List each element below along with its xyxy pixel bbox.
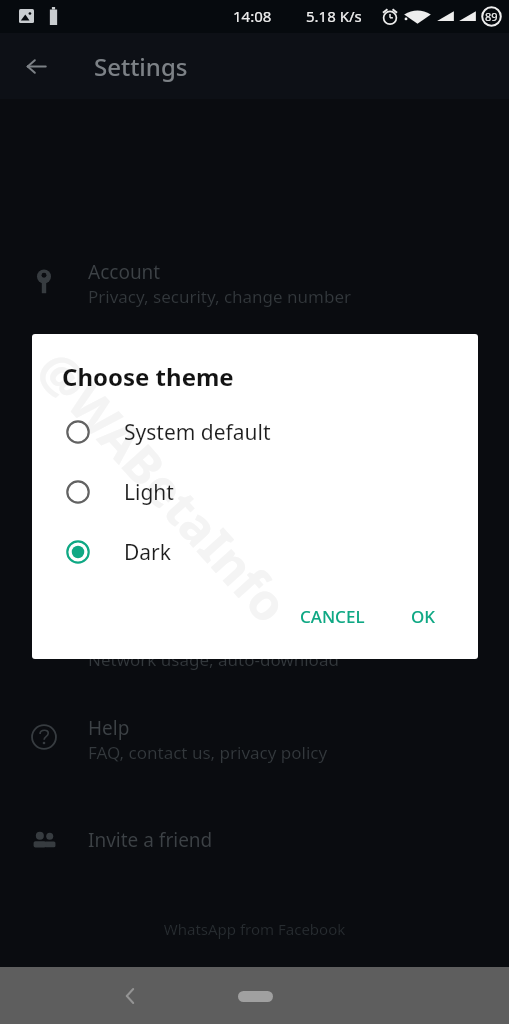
staticText: Account xyxy=(88,259,161,285)
staticText: WhatsApp from Facebook xyxy=(0,919,509,939)
button[interactable]: Back xyxy=(108,974,152,1018)
button[interactable]: Help xyxy=(0,701,509,792)
staticText: CANCEL xyxy=(300,605,365,628)
staticText: OK xyxy=(411,605,436,628)
button[interactable]: Back xyxy=(13,43,59,89)
button[interactable]: Invite a friend xyxy=(0,804,509,876)
staticText: Theme, wallpapers, chat history xyxy=(88,376,342,399)
staticText: Message, group & call tones xyxy=(88,467,314,490)
button[interactable]: Account xyxy=(0,245,509,336)
button[interactable]: Dark xyxy=(32,522,478,582)
staticText: 89 xyxy=(485,9,498,24)
button[interactable]: Notifications xyxy=(0,427,509,518)
button[interactable]: CANCEL xyxy=(292,597,373,636)
staticText: Choose theme xyxy=(62,360,234,393)
staticText: Help xyxy=(88,715,130,741)
button[interactable]: Data and storage usage xyxy=(0,518,509,609)
staticText: FAQ, contact us, privacy policy xyxy=(88,741,328,764)
button[interactable]: OK xyxy=(403,597,444,636)
staticText: Network usage, auto-download xyxy=(88,558,339,581)
staticText: 5.18 K/s xyxy=(306,6,362,26)
staticText: 14:08 xyxy=(233,6,272,26)
button[interactable]: Storage and data xyxy=(0,608,509,699)
button[interactable]: System default xyxy=(32,402,478,462)
staticText: System default xyxy=(124,418,271,447)
staticText: Settings xyxy=(94,50,188,83)
staticText: Data and storage usage xyxy=(88,532,301,558)
button[interactable]: Home xyxy=(223,980,287,1012)
staticText: Chats xyxy=(88,350,139,376)
staticText: Invite a friend xyxy=(88,827,213,853)
button[interactable]: Light xyxy=(32,462,478,522)
staticText: Light xyxy=(124,478,174,507)
staticText: Dark xyxy=(124,538,171,567)
staticText: Network usage, auto-download xyxy=(88,648,339,671)
staticText: @WABetaInfo xyxy=(32,336,304,637)
button[interactable]: Chats xyxy=(0,336,509,427)
staticText: Privacy, security, change number xyxy=(88,285,352,308)
staticText: Notifications xyxy=(88,441,202,467)
